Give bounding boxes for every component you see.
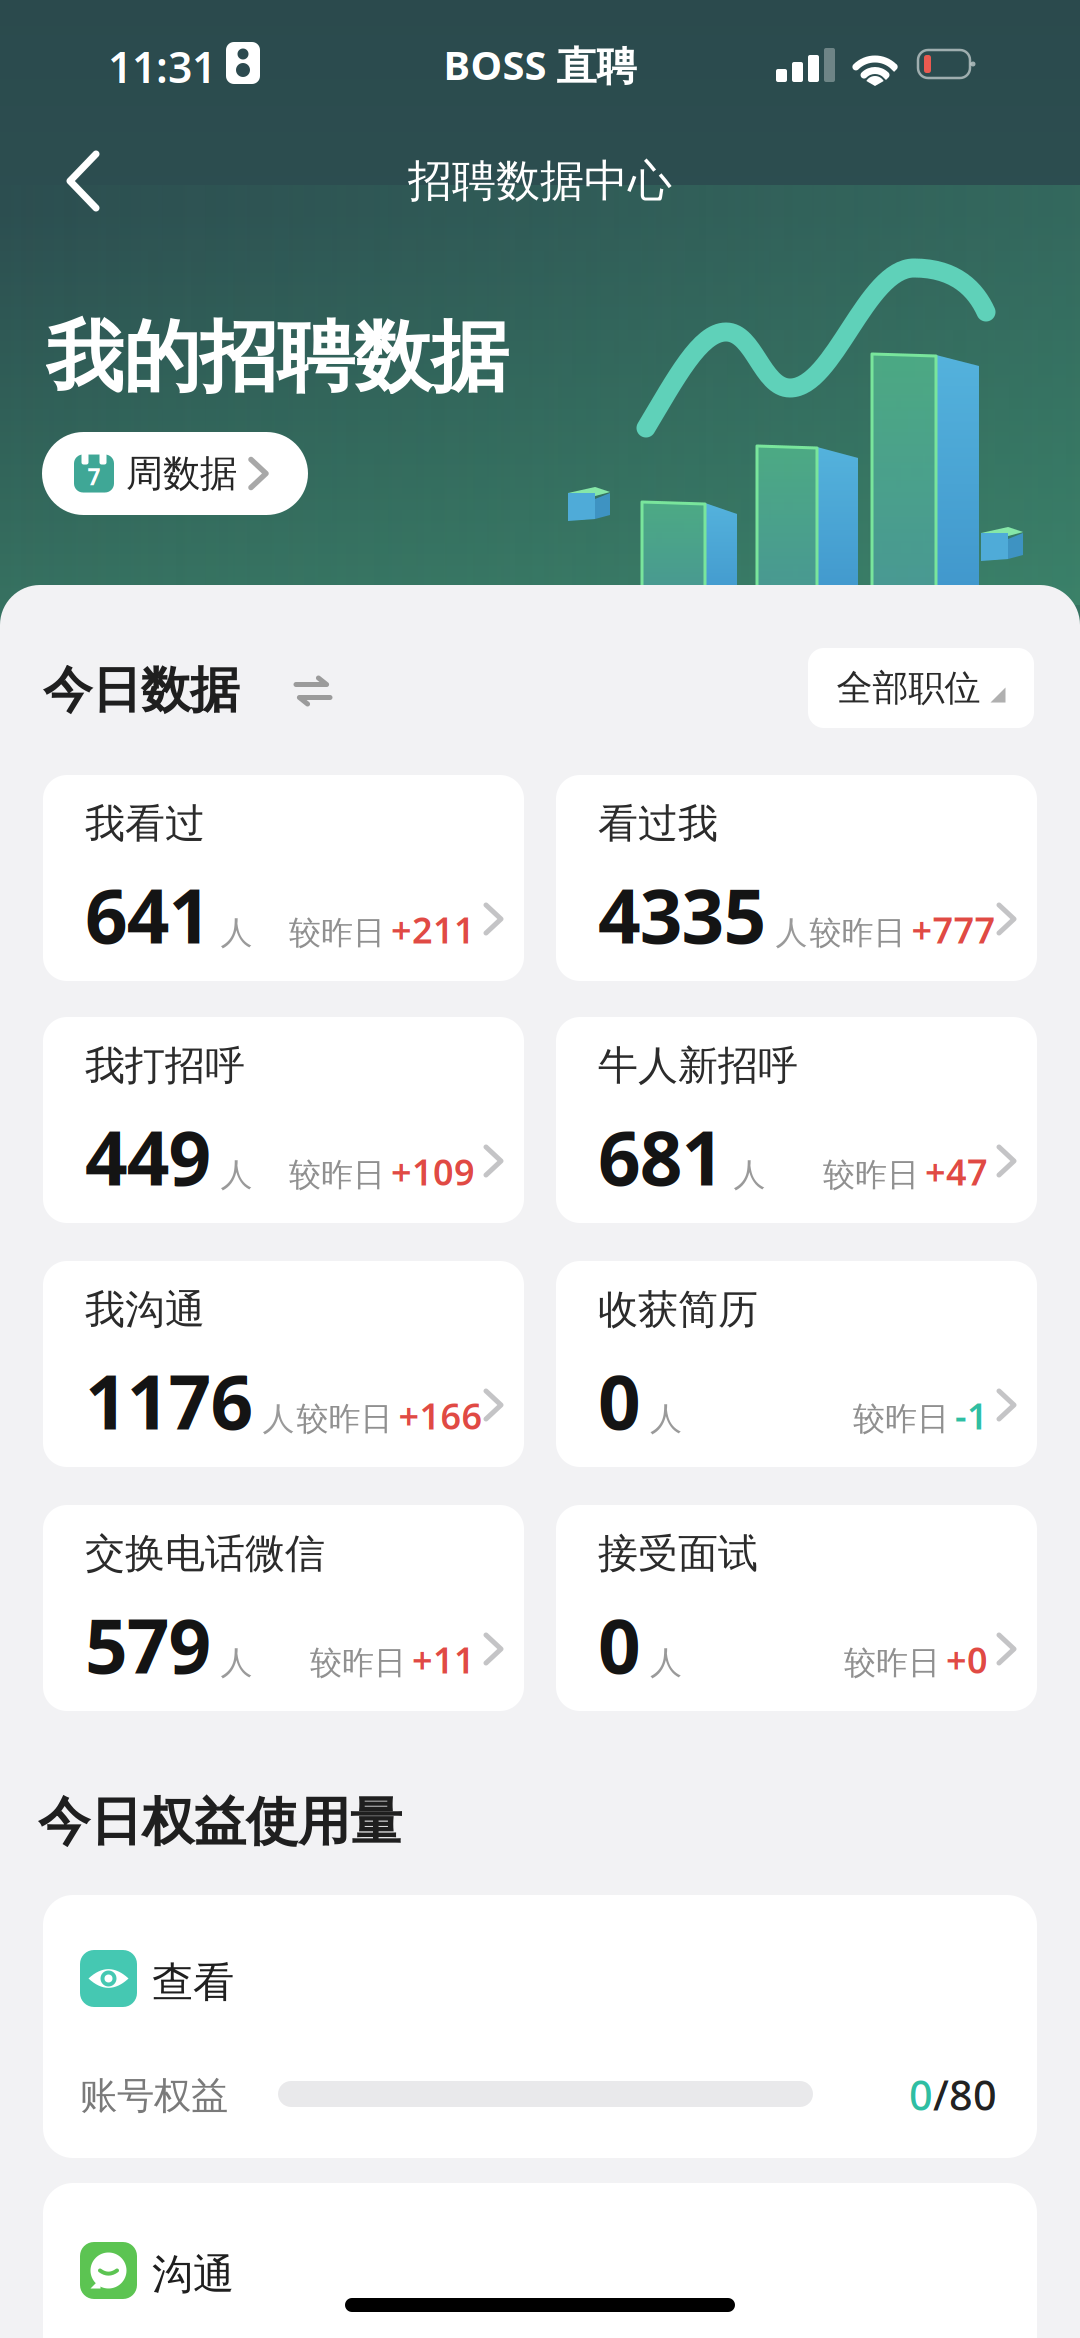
staticText: 周数据 — [126, 451, 237, 496]
button[interactable]: 我看过 — [43, 775, 524, 981]
staticText: 较昨日 — [289, 913, 385, 952]
staticText: 较昨日 — [310, 1643, 406, 1682]
staticText: 0 — [598, 1595, 641, 1694]
button[interactable]: 接受面试 — [556, 1505, 1037, 1711]
staticText: 查看 — [152, 1957, 234, 2008]
button[interactable]: 我打招呼 — [43, 1017, 524, 1223]
staticText: 0 — [598, 1351, 641, 1450]
staticText: 我打招呼 — [85, 1041, 245, 1090]
staticText: 人 — [221, 1155, 253, 1194]
staticText: 人 — [734, 1155, 766, 1194]
staticText: 较昨日 — [296, 1399, 392, 1438]
staticText: -1 — [955, 1392, 988, 1439]
button[interactable]: 收获简历 — [556, 1261, 1037, 1467]
staticText: 较昨日 — [289, 1155, 385, 1194]
staticText: +777 — [911, 906, 995, 953]
staticText: 681 — [598, 1107, 725, 1206]
staticText: 4335 — [598, 865, 766, 964]
staticText: 较昨日 — [809, 913, 905, 952]
button[interactable]: Back — [50, 134, 116, 228]
staticText: 我看过 — [85, 799, 205, 848]
staticText: 我的招聘数据 — [46, 310, 508, 405]
button[interactable]: 看过我 — [556, 775, 1037, 981]
staticText: 牛人新招呼 — [598, 1041, 798, 1090]
staticText: 沟通 — [152, 2249, 234, 2300]
staticText: +11 — [412, 1636, 475, 1683]
staticText: 今日数据 — [43, 660, 239, 721]
staticText: 接受面试 — [598, 1529, 758, 1578]
staticText: +109 — [391, 1148, 475, 1195]
staticText: 较昨日 — [844, 1643, 940, 1682]
staticText: BOSS 直聘 — [443, 38, 636, 91]
staticText: 我沟通 — [85, 1285, 205, 1334]
staticText: 看过我 — [598, 799, 718, 848]
staticText: 招聘数据中心 — [408, 154, 672, 208]
staticText: 579 — [85, 1595, 212, 1694]
staticText: 人 — [650, 1399, 682, 1438]
staticText: 收获简历 — [598, 1285, 758, 1334]
staticText: 较昨日 — [853, 1399, 949, 1438]
staticText: 人 — [650, 1643, 682, 1682]
button[interactable]: 全部职位 — [808, 648, 1034, 728]
staticText: 今日权益使用量 — [38, 1790, 402, 1854]
button[interactable]: 我沟通 — [43, 1261, 524, 1467]
staticText: 7 — [87, 461, 100, 491]
button[interactable]: 7 — [42, 432, 308, 515]
staticText: 人 — [221, 913, 253, 952]
button[interactable]: 沟通 — [43, 2183, 1037, 2338]
staticText: 641 — [85, 865, 212, 964]
button[interactable]: 交换电话微信 — [43, 1505, 524, 1711]
staticText: +211 — [391, 906, 475, 953]
staticText: +0 — [946, 1636, 988, 1683]
staticText: +47 — [925, 1148, 988, 1195]
staticText: 0 — [909, 2067, 933, 2122]
staticText: 人 — [775, 913, 807, 952]
staticText: 人 — [221, 1643, 253, 1682]
staticText: /80 — [933, 2067, 997, 2122]
staticText: 11:31 — [108, 38, 216, 95]
staticText: 1176 — [85, 1351, 253, 1450]
staticText: 449 — [85, 1107, 212, 1206]
staticText: 较昨日 — [823, 1155, 919, 1194]
staticText: 交换电话微信 — [85, 1529, 325, 1578]
staticText: 账号权益 — [80, 2073, 228, 2119]
button[interactable]: 牛人新招呼 — [556, 1017, 1037, 1223]
staticText: 全部职位 — [836, 666, 980, 710]
staticText: 人 — [262, 1399, 294, 1438]
button[interactable]: 切换数据 — [296, 678, 330, 704]
button[interactable]: 查看 — [43, 1895, 1037, 2158]
staticText: +166 — [398, 1392, 482, 1439]
